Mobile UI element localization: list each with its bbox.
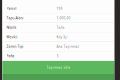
staticText: 3 xyxy=(56,54,58,58)
staticText: Mevkii xyxy=(6,35,17,39)
button[interactable]: Nitelik xyxy=(2,23,114,32)
button[interactable]: Pafta xyxy=(2,51,114,61)
staticText: 199 xyxy=(56,6,62,11)
staticText: Zemin Tipi xyxy=(6,44,23,49)
staticText: Köy İçi xyxy=(56,35,67,39)
button[interactable]: Zemin Tipi xyxy=(2,42,114,51)
button[interactable]: Mevkii xyxy=(2,32,114,42)
staticText: Taşınmaz ekle xyxy=(46,65,70,70)
button[interactable]: Taşınmaz ekle xyxy=(2,61,114,74)
staticText: Pafta xyxy=(6,54,14,58)
staticText: Parsel xyxy=(6,6,16,11)
button[interactable]: Tapu Alanı xyxy=(2,13,114,23)
staticText: Tarla xyxy=(56,25,64,30)
staticText: Nitelik xyxy=(6,25,16,30)
staticText: Ana Taşınmaz xyxy=(56,44,79,49)
button[interactable]: Parsel xyxy=(2,4,114,13)
staticText: Tapu Alanı xyxy=(6,16,23,20)
staticText: 1.000,00 xyxy=(56,16,70,20)
